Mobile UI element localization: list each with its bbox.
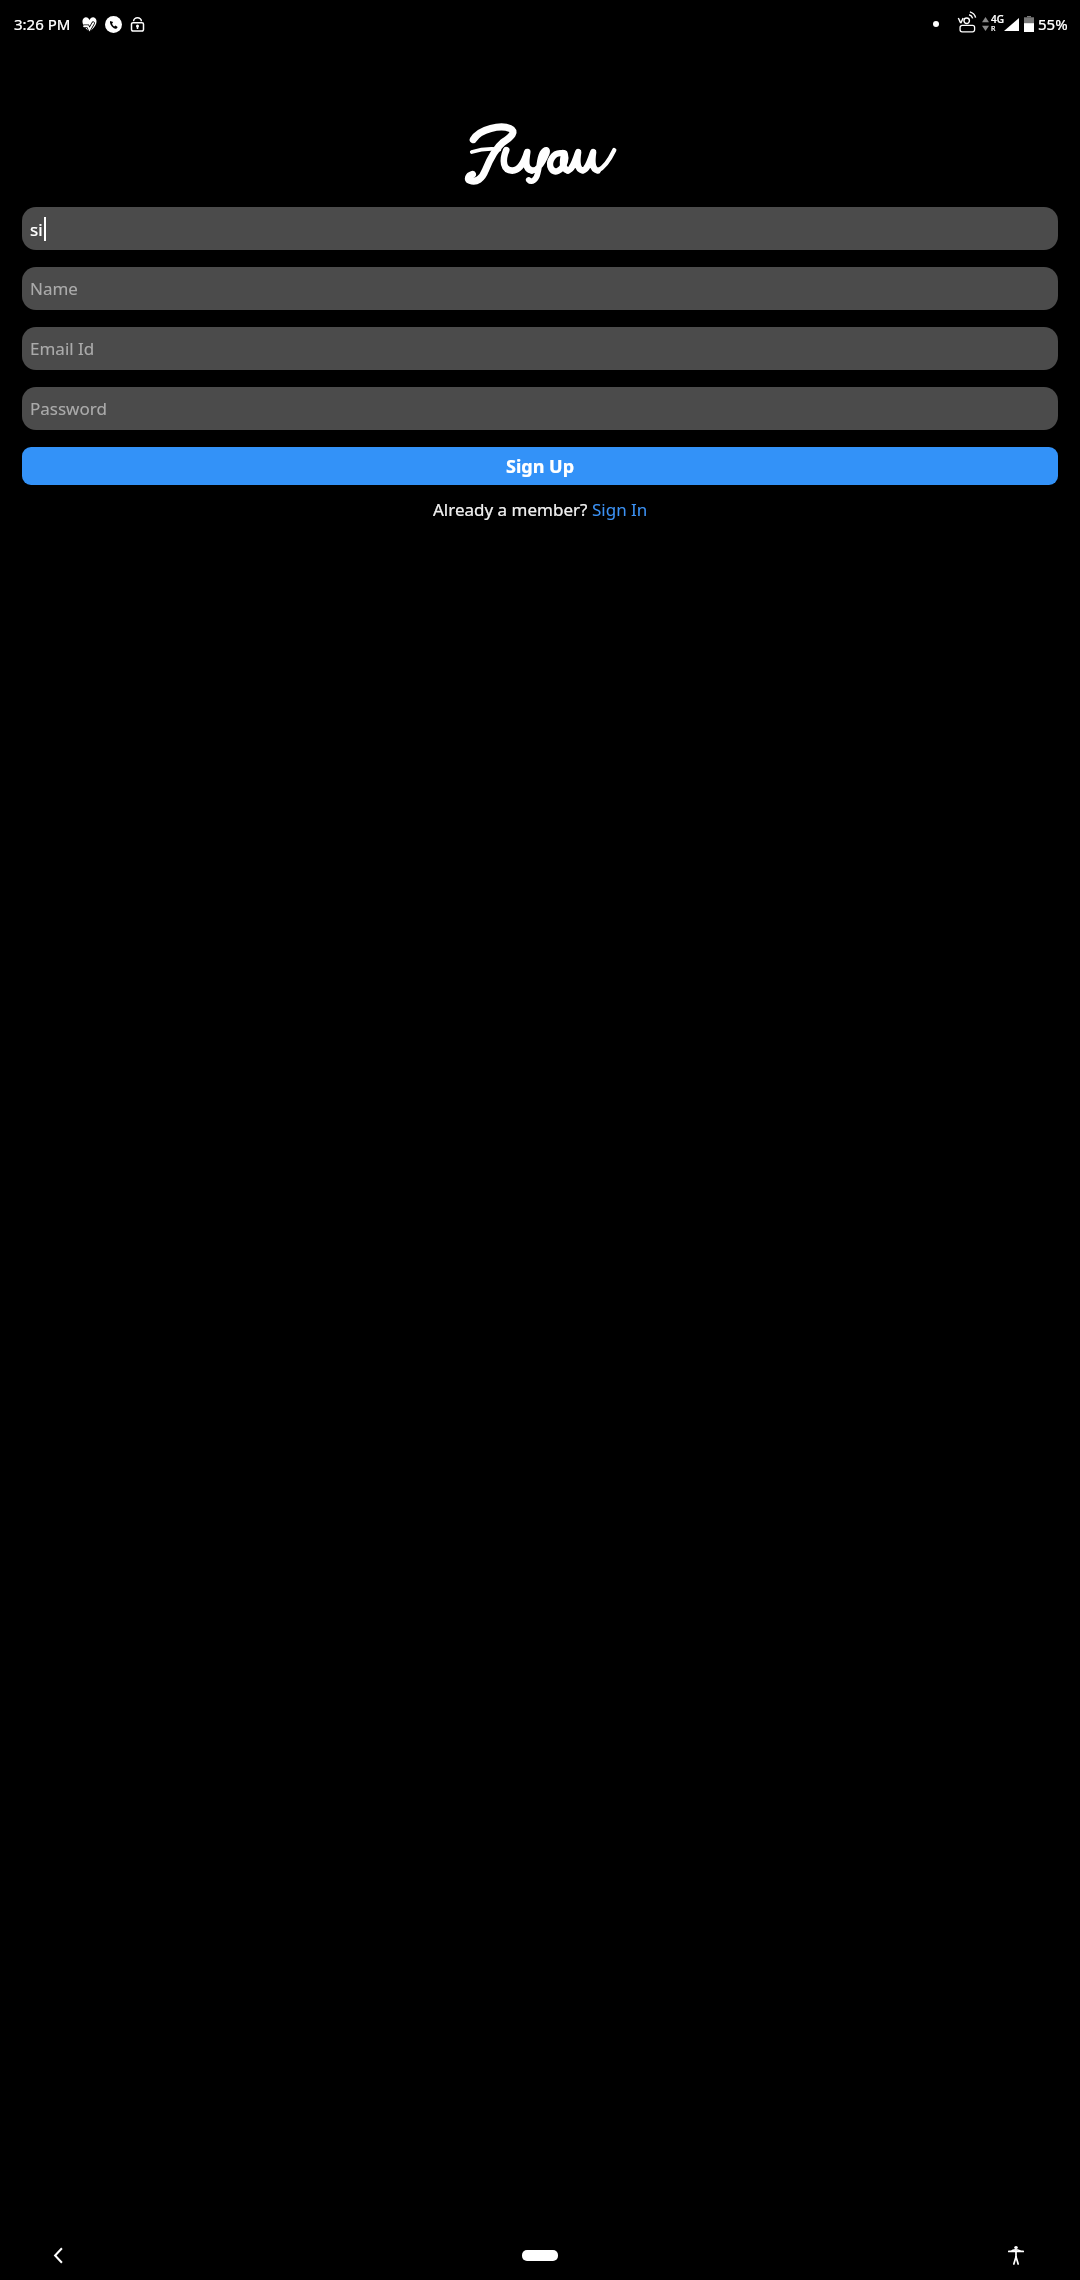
staticText: Sign In (592, 498, 648, 521)
staticText: R (991, 24, 996, 34)
staticText: 4G (991, 12, 1004, 26)
button[interactable]: Back (38, 2235, 78, 2275)
button[interactable]: si (22, 207, 1058, 250)
staticText: Email Id (30, 337, 95, 360)
button[interactable]: Accessibility (996, 2235, 1036, 2275)
staticText: 3:26 PM (14, 14, 71, 34)
staticText: 55% (1038, 14, 1068, 34)
button[interactable]: Name (22, 267, 1058, 310)
staticText: Already a member? (433, 498, 592, 521)
button[interactable]: Sign In (592, 498, 648, 521)
staticText: si (30, 218, 43, 241)
button[interactable]: Email Id (22, 327, 1058, 370)
button[interactable]: Home (510, 2240, 570, 2270)
staticText: Sign Up (506, 454, 575, 479)
staticText: Name (30, 277, 78, 300)
button[interactable]: Sign Up (22, 447, 1058, 485)
staticText: Password (30, 397, 107, 420)
button[interactable]: Password (22, 387, 1058, 430)
